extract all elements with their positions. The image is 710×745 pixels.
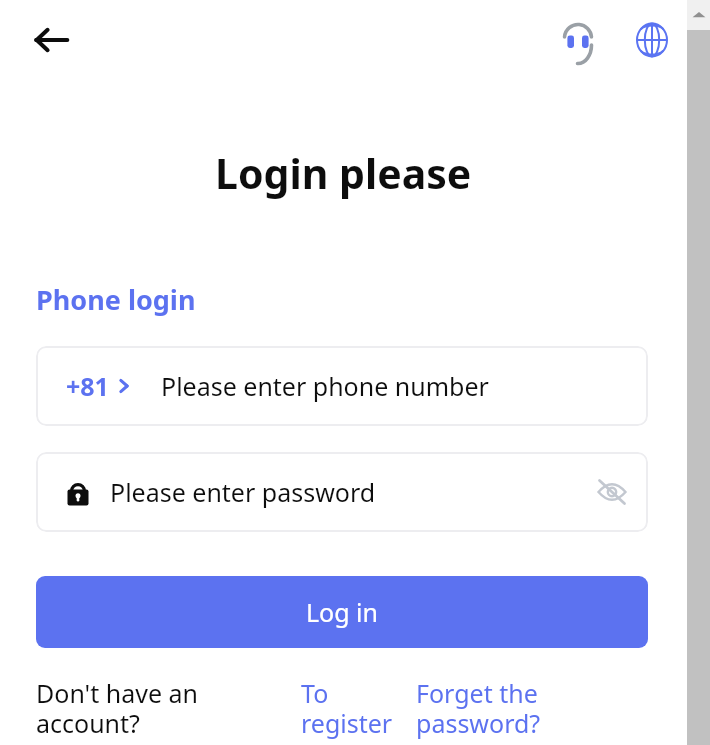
button[interactable]: Forget the password? [416, 676, 596, 741]
staticText: Login please [215, 145, 472, 201]
staticText: Log in [306, 595, 379, 629]
button[interactable]: Customer service [554, 16, 602, 64]
staticText: Please enter password [110, 475, 376, 509]
staticText: Please enter phone number [161, 369, 489, 403]
button[interactable]: To register [301, 676, 416, 741]
button[interactable]: Show password [586, 466, 638, 518]
staticText: Phone login [36, 281, 196, 318]
staticText: Forget the password? [416, 676, 596, 741]
button[interactable]: +81 [36, 346, 648, 426]
button[interactable]: Language [628, 16, 676, 64]
staticText: To register [301, 676, 416, 741]
staticText: Don't have an account? [36, 676, 301, 741]
button[interactable]: Please enter password [36, 452, 648, 532]
button[interactable]: Don't have an account? [36, 676, 301, 741]
button[interactable]: Back [27, 16, 75, 64]
staticText: +81 [66, 369, 109, 403]
button[interactable]: Log in [36, 576, 648, 648]
